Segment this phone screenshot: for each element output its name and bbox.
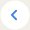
- button[interactable]: Back: [0, 0, 30, 30]
